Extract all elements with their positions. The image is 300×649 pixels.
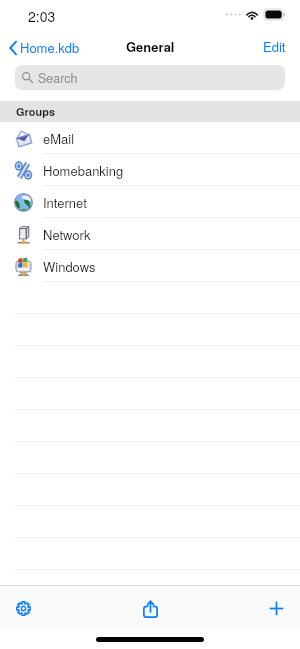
staticText: General (126, 37, 175, 56)
staticText: Network (43, 225, 91, 244)
button[interactable]: Homebanking (0, 154, 300, 186)
button[interactable]: eMail (0, 122, 300, 154)
button[interactable]: Internet (0, 186, 300, 218)
button[interactable]: Edit (249, 31, 300, 62)
staticText: 2:03 (28, 6, 56, 26)
button[interactable]: Share (127, 588, 174, 630)
staticText: Homebanking (43, 161, 124, 180)
staticText: Search (38, 69, 78, 87)
staticText: Edit (263, 37, 286, 56)
button[interactable]: Windows (0, 250, 300, 282)
staticText: eMail (43, 129, 75, 148)
staticText: Home.kdb (20, 38, 80, 57)
button[interactable]: Search (15, 65, 285, 90)
button[interactable]: Home.kdb (0, 34, 86, 61)
staticText: Windows (43, 257, 96, 276)
staticText: Internet (43, 193, 87, 212)
staticText: Groups (16, 104, 56, 120)
button[interactable]: Settings (0, 589, 47, 628)
button[interactable]: Network (0, 218, 300, 250)
button[interactable]: Add (253, 589, 300, 628)
